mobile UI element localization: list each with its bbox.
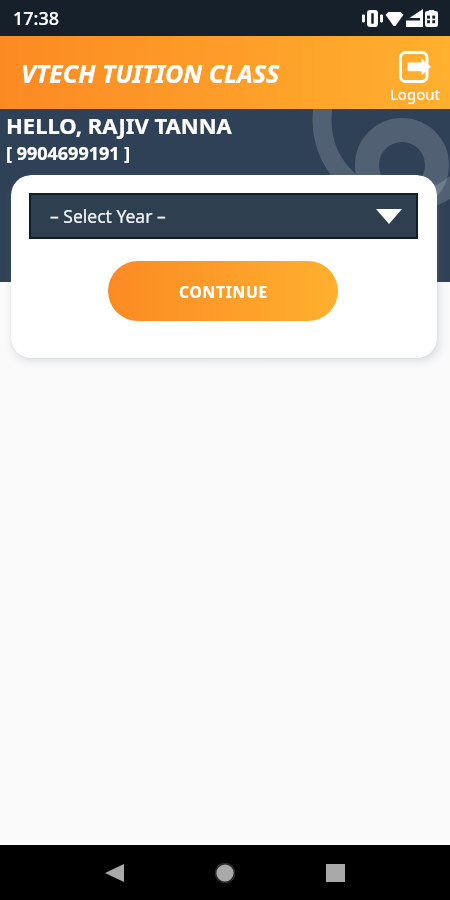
- button[interactable]: Logout: [388, 51, 442, 104]
- staticText: HELLO, RAJIV TANNA: [6, 110, 232, 140]
- button[interactable]: – Select Year –: [31, 195, 416, 237]
- button[interactable]: CONTINUE: [108, 261, 338, 321]
- staticText: VTECH TUITION CLASS: [21, 56, 280, 90]
- button[interactable]: Recents: [299, 845, 371, 900]
- button[interactable]: Back: [78, 845, 150, 900]
- button[interactable]: Home: [189, 845, 261, 900]
- staticText: – Select Year –: [50, 204, 166, 228]
- staticText: 17:38: [13, 6, 60, 31]
- staticText: CONTINUE: [179, 281, 268, 302]
- staticText: [ 9904699191 ]: [6, 141, 131, 166]
- staticText: Logout: [390, 84, 440, 104]
